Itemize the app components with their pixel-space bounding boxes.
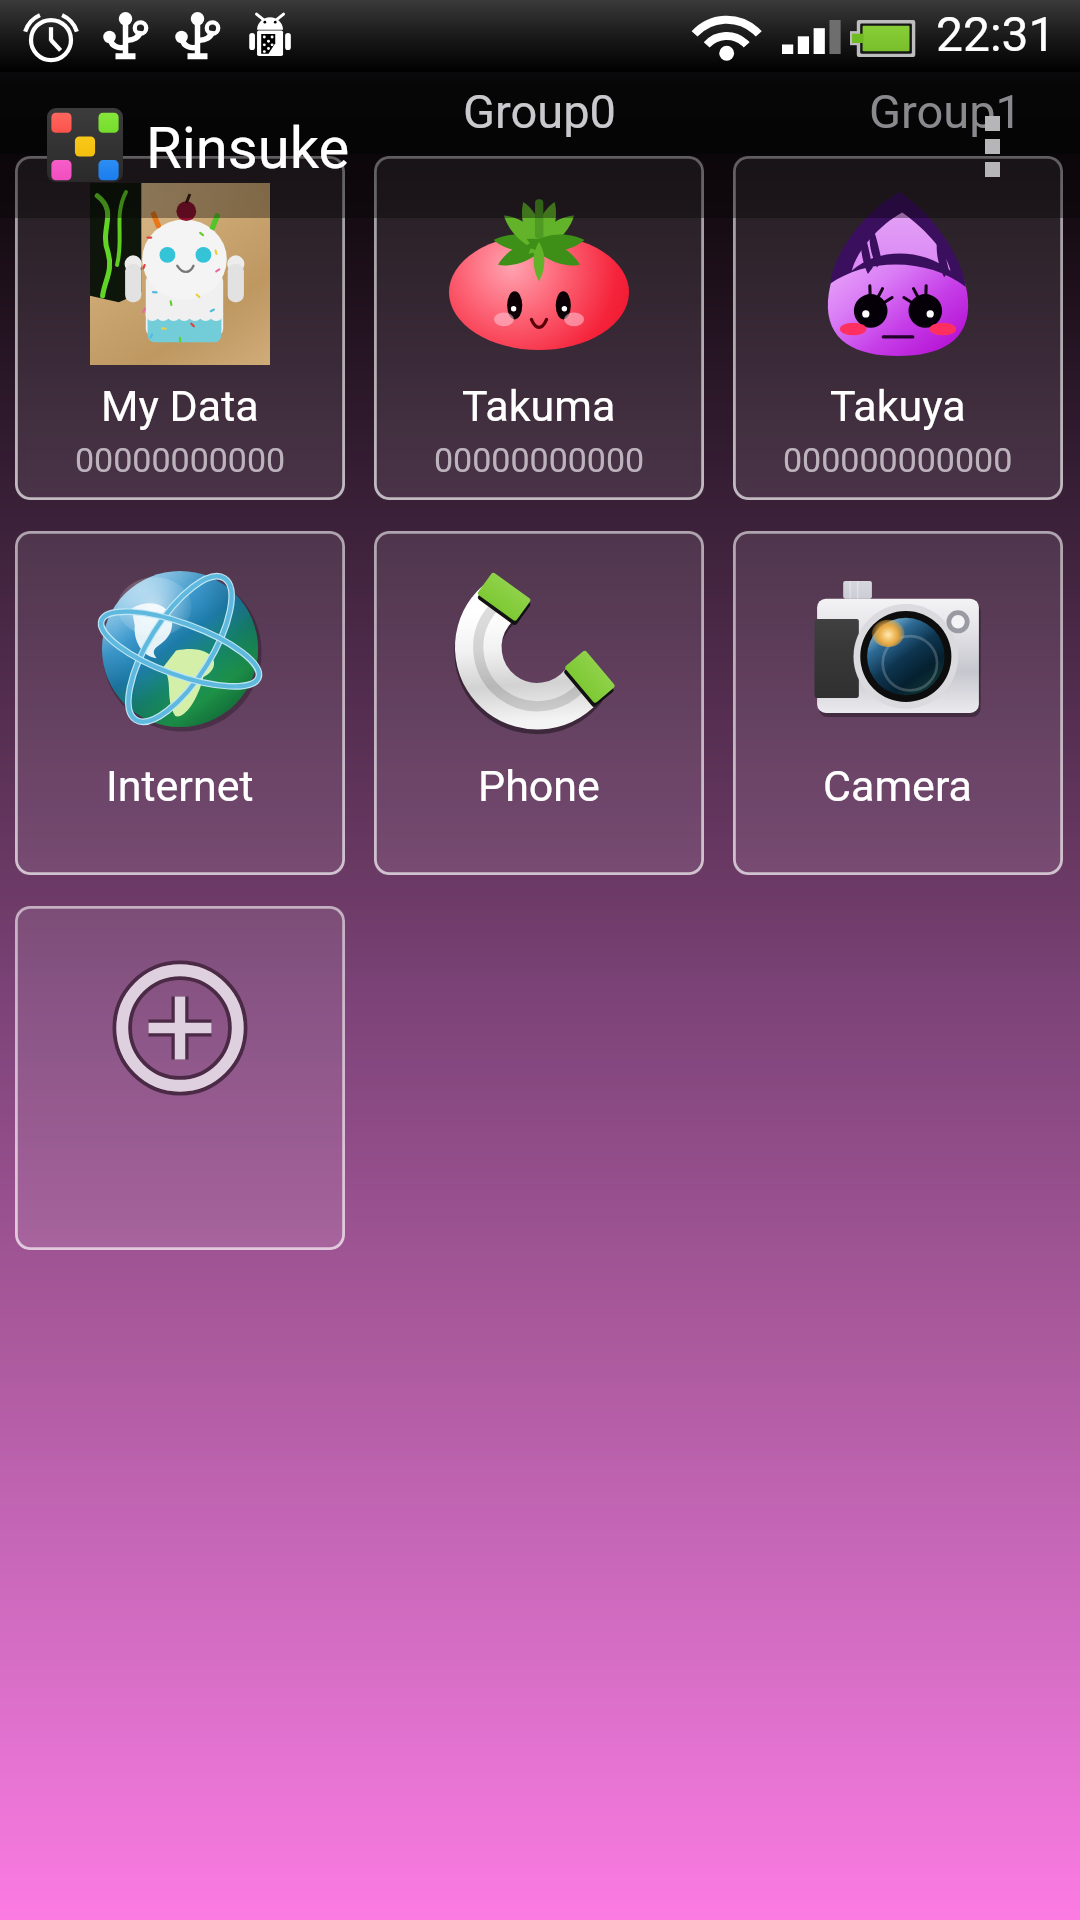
- staticText: 22:31: [936, 6, 1056, 62]
- staticText: My Data: [101, 381, 259, 431]
- button[interactable]: Takuya: [733, 156, 1063, 500]
- staticText: 00000000000: [75, 440, 286, 480]
- staticText: Group0: [463, 84, 617, 139]
- button[interactable]: My Data: [15, 156, 345, 500]
- staticText: Rinsuke: [146, 114, 350, 182]
- staticText: Internet: [106, 761, 254, 811]
- staticText: 000000000000: [783, 440, 1013, 480]
- button[interactable]: Add: [15, 906, 345, 1250]
- button[interactable]: Phone: [374, 531, 704, 875]
- staticText: 00000000000: [434, 440, 645, 480]
- staticText: Phone: [478, 761, 600, 811]
- staticText: Group1: [869, 84, 1023, 139]
- staticText: Camera: [823, 761, 973, 811]
- button[interactable]: Group0: [360, 72, 720, 150]
- button[interactable]: Takuma: [374, 156, 704, 500]
- staticText: Takuya: [830, 381, 966, 431]
- button[interactable]: Camera: [733, 531, 1063, 875]
- button[interactable]: Group1: [720, 72, 1080, 150]
- button[interactable]: Internet: [15, 531, 345, 875]
- staticText: Takuma: [462, 381, 616, 431]
- button[interactable]: More options: [952, 96, 1032, 196]
